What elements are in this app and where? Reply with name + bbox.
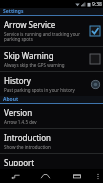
button[interactable]: Arrow Service [0,16,103,46]
staticText: Introduction [4,132,51,143]
button[interactable]: Back [0,169,30,183]
staticText: Past parking spots in your history [4,87,75,93]
button[interactable]: History options [91,80,100,89]
staticText: Support [4,157,35,166]
button[interactable]: Skip Warning [0,47,103,71]
button[interactable]: Home [30,169,61,183]
staticText: History [4,75,31,86]
staticText: Skip Warning [4,50,54,61]
staticText: About [3,96,19,103]
button[interactable]: Introduction [0,129,103,153]
button[interactable]: Enabled [90,26,100,36]
staticText: Always skip the GPS warning [4,62,65,68]
staticText: Show the introduction [4,144,51,150]
button[interactable]: Disabled [90,54,100,64]
staticText: 9:38 [92,1,102,8]
staticText: Service is running and tracking your par… [4,31,87,43]
button[interactable]: Recent apps [61,169,92,183]
button[interactable]: Support [0,154,103,169]
button[interactable]: More options [92,169,103,183]
staticText: Settings [3,8,24,15]
button[interactable]: History [0,72,103,96]
staticText: Version [4,107,33,118]
staticText: Arrow Service [4,19,56,30]
staticText: Arrow 1.4.5 dev [4,119,37,125]
button[interactable]: Version [0,104,103,128]
